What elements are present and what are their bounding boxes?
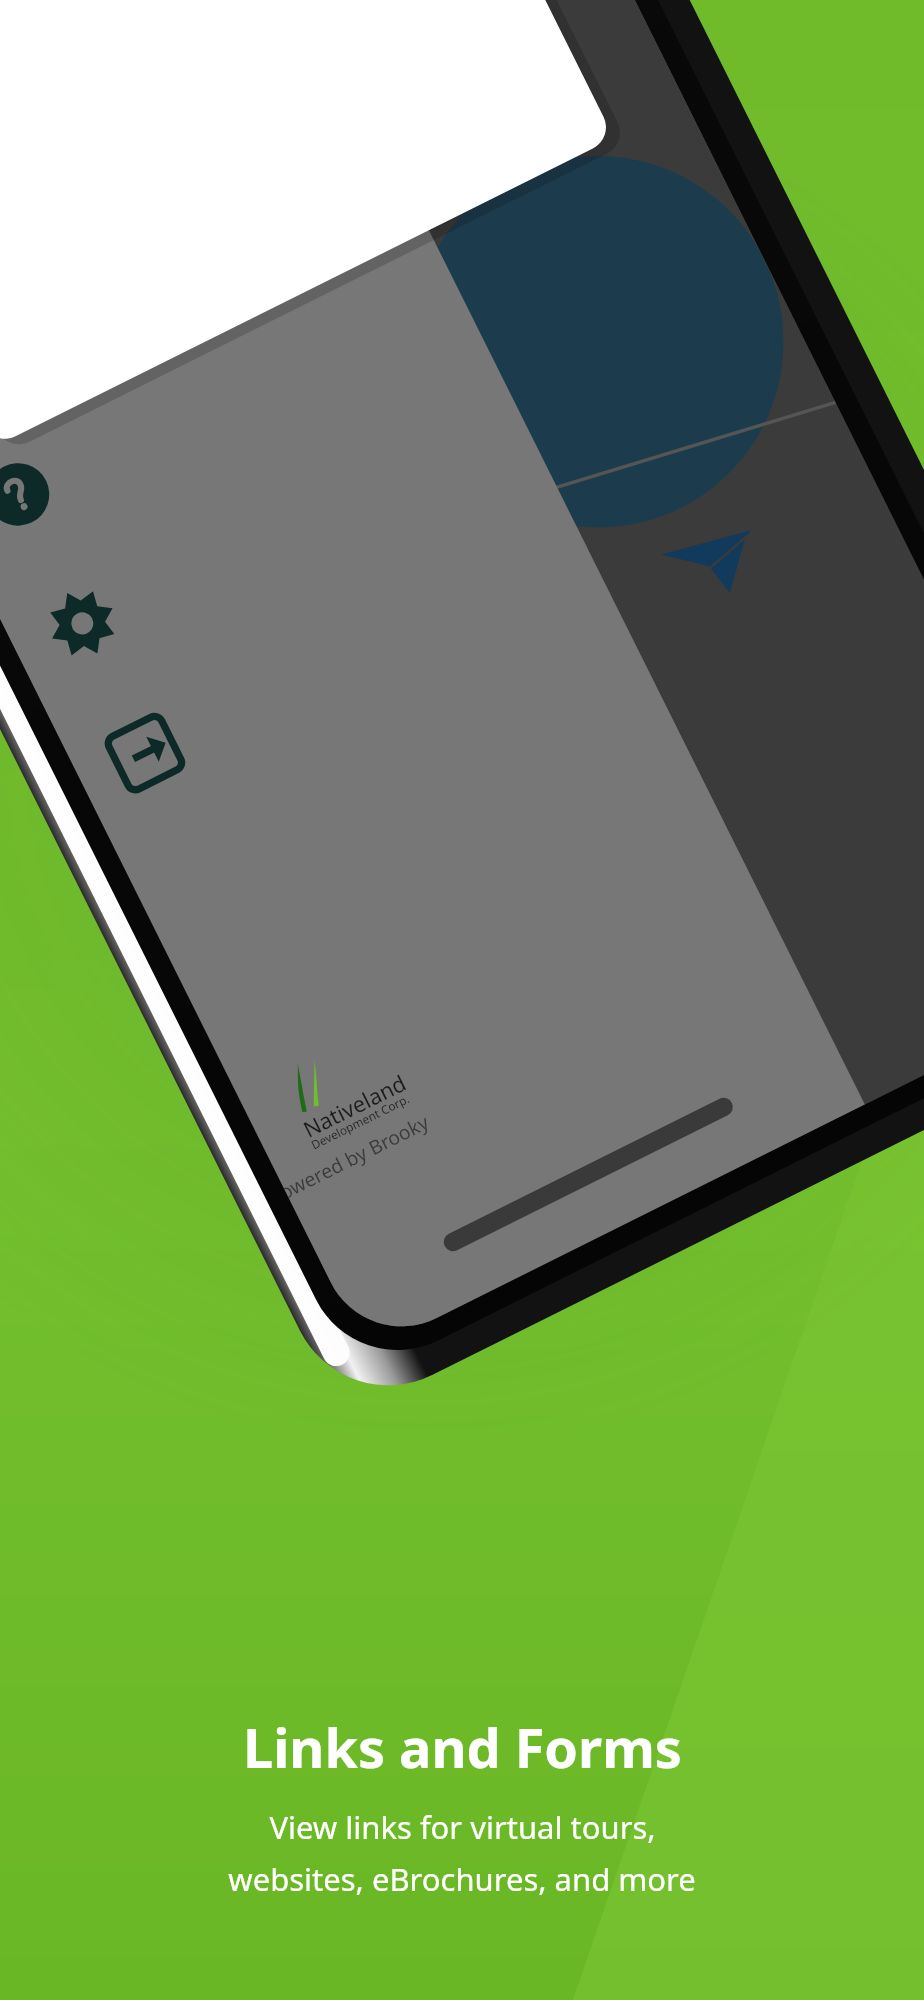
staticText: websites, eBrochures, and more: [228, 1858, 696, 1900]
staticText: Links and Forms: [243, 1710, 682, 1784]
staticText: View links for virtual tours,: [269, 1806, 656, 1848]
